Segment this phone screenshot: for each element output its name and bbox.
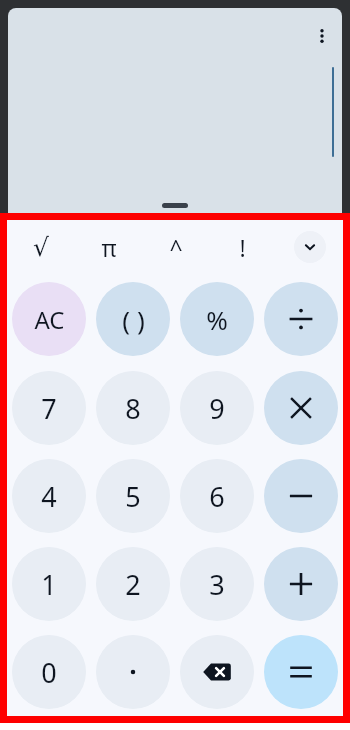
button[interactable]: 6 (180, 459, 254, 533)
staticText: % (206, 302, 228, 337)
button[interactable]: 9 (180, 371, 254, 445)
button[interactable]: ( ) (96, 282, 170, 356)
button[interactable]: 3 (180, 547, 254, 621)
staticText: 4 (41, 478, 57, 515)
staticText: 5 (125, 478, 141, 515)
button[interactable]: More options (308, 22, 336, 50)
button[interactable]: Minus (264, 459, 338, 533)
staticText: 6 (209, 478, 225, 515)
button[interactable]: π (75, 220, 142, 274)
staticText: ! (239, 232, 246, 263)
button[interactable]: ^ (142, 220, 209, 274)
button[interactable]: AC (12, 282, 86, 356)
button[interactable]: Equals (264, 635, 338, 709)
button[interactable]: Plus (264, 547, 338, 621)
button[interactable]: 5 (96, 459, 170, 533)
staticText: 7 (41, 390, 57, 427)
staticText: √ (33, 233, 49, 262)
button[interactable]: 1 (12, 547, 86, 621)
staticText: 1 (41, 566, 57, 603)
button[interactable]: 4 (12, 459, 86, 533)
button[interactable]: √ (7, 220, 75, 274)
button[interactable]: Divide (264, 282, 338, 356)
button[interactable]: % (180, 282, 254, 356)
button[interactable]: ! (209, 220, 276, 274)
button[interactable]: 8 (96, 371, 170, 445)
button[interactable]: 0 (12, 635, 86, 709)
button[interactable]: Expand functions (294, 231, 326, 263)
staticText: ( ) (122, 302, 145, 337)
staticText: 8 (125, 390, 141, 427)
staticText: 9 (209, 390, 225, 427)
staticText: 2 (125, 566, 141, 603)
button[interactable]: 2 (96, 547, 170, 621)
staticText: 3 (209, 566, 225, 603)
staticText: 0 (41, 654, 57, 691)
staticText: ^ (169, 232, 183, 263)
button[interactable]: Multiply (264, 371, 338, 445)
staticText: AC (34, 303, 65, 336)
button[interactable]: Decimal point (96, 635, 170, 709)
button[interactable]: Backspace (180, 635, 254, 709)
button[interactable]: 7 (12, 371, 86, 445)
staticText: π (101, 232, 117, 263)
